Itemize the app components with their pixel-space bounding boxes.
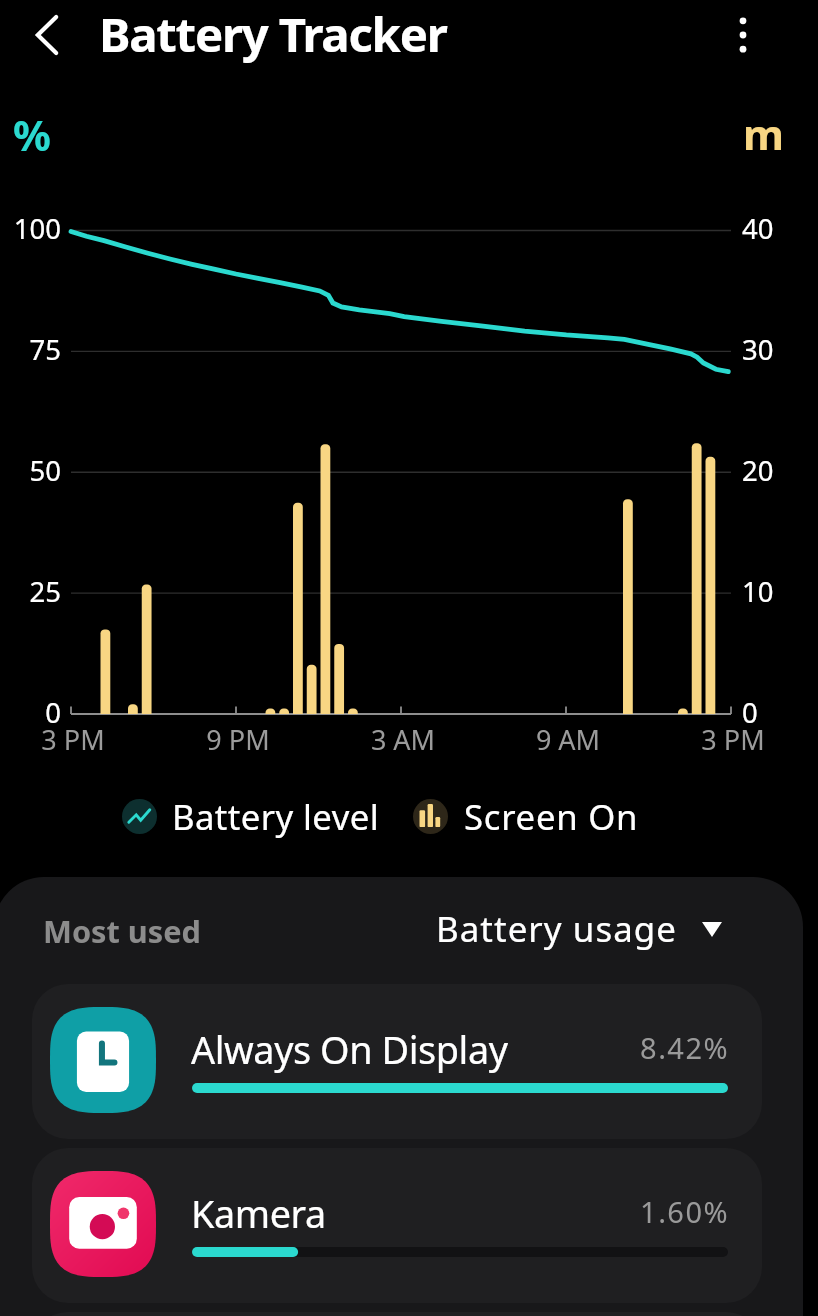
staticText: m (743, 105, 784, 162)
staticText: 0 (2, 694, 61, 731)
staticText: % (13, 106, 51, 163)
staticText: Screen On (464, 793, 639, 840)
staticText: 3 PM (673, 721, 793, 758)
button[interactable]: Battery level (122, 791, 376, 841)
staticText: 10 (742, 573, 774, 610)
staticText: Battery Tracker (99, 1, 447, 65)
staticText: Battery usage (436, 905, 677, 953)
staticText: 100 (2, 210, 61, 247)
button[interactable]: Battery usage (428, 897, 730, 961)
staticText: 40 (742, 210, 774, 247)
staticText: 1.60% (432, 1192, 729, 1231)
staticText: 3 AM (343, 721, 463, 758)
button[interactable]: Navigate up (15, 3, 79, 67)
button[interactable]: Screen On (413, 791, 635, 841)
staticText: Battery level (172, 793, 380, 840)
staticText: 30 (742, 331, 774, 368)
staticText: Kamera (191, 1188, 326, 1239)
button[interactable]: More options (711, 3, 775, 67)
staticText: 8.42% (432, 1028, 729, 1067)
staticText: Most used (43, 910, 201, 952)
staticText: 0 (742, 694, 758, 731)
staticText: 9 AM (508, 721, 628, 758)
staticText: 3 PM (13, 721, 133, 758)
staticText: 9 PM (178, 721, 298, 758)
staticText: 25 (2, 573, 61, 610)
button[interactable]: Kamera (32, 1148, 762, 1303)
staticText: 75 (2, 331, 61, 368)
staticText: 50 (2, 452, 61, 489)
button[interactable]: Always On Display (32, 984, 762, 1139)
staticText: Always On Display (191, 1024, 508, 1075)
staticText: 20 (742, 452, 774, 489)
